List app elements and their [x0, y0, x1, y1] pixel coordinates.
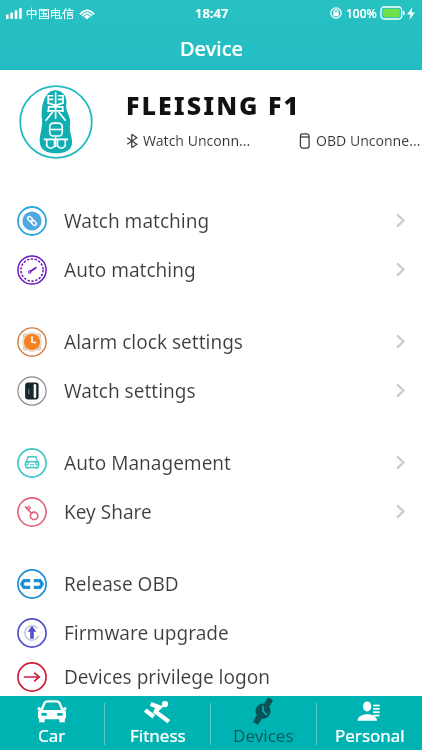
- staticText: Device: [180, 35, 243, 62]
- button[interactable]: Auto Management: [0, 438, 422, 487]
- button[interactable]: Release OBD: [0, 559, 422, 608]
- staticText: Devices privilege logon: [64, 664, 270, 690]
- staticText: Watch Unconn...: [143, 131, 251, 150]
- staticText: Alarm clock settings: [64, 329, 243, 355]
- button[interactable]: Auto matching: [0, 245, 422, 294]
- staticText: Personal: [335, 724, 405, 747]
- button[interactable]: Car: [0, 696, 104, 750]
- button[interactable]: Devices: [211, 696, 316, 750]
- button[interactable]: Alarm clock settings: [0, 317, 422, 366]
- staticText: FLEISING F1: [126, 88, 301, 122]
- button[interactable]: Watch matching: [0, 196, 422, 245]
- button[interactable]: Watch settings: [0, 366, 422, 415]
- staticText: Firmware upgrade: [64, 620, 229, 646]
- staticText: 100%: [346, 5, 377, 21]
- staticText: OBD Unconne...: [316, 131, 421, 150]
- staticText: Key Share: [64, 499, 152, 525]
- staticText: Release OBD: [64, 571, 179, 597]
- staticText: Watch settings: [64, 378, 196, 404]
- staticText: 中国电信: [26, 6, 74, 21]
- staticText: Devices: [233, 724, 294, 747]
- button[interactable]: Fitness: [105, 696, 210, 750]
- button[interactable]: Devices privilege logon: [0, 657, 422, 696]
- staticText: Auto Management: [64, 450, 231, 476]
- staticText: Auto matching: [64, 257, 196, 283]
- staticText: Car: [38, 724, 66, 747]
- button[interactable]: Key Share: [0, 487, 422, 536]
- button[interactable]: Firmware upgrade: [0, 608, 422, 657]
- staticText: Fitness: [130, 724, 186, 747]
- staticText: 18:47: [195, 4, 229, 22]
- button[interactable]: Personal: [317, 696, 422, 750]
- staticText: Watch matching: [64, 208, 210, 234]
